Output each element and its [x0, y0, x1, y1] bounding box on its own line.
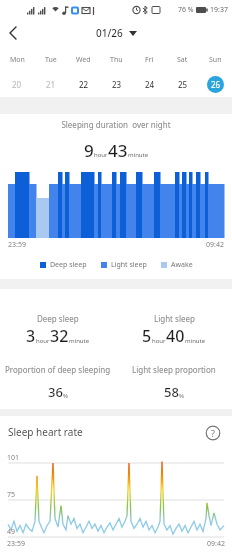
staticText: Deep sleep	[37, 313, 79, 324]
button[interactable]: 23	[112, 79, 122, 90]
staticText: ?	[211, 427, 215, 439]
staticText: minute	[69, 337, 90, 345]
staticText: %	[63, 392, 68, 400]
staticText: Sat	[177, 55, 188, 65]
staticText: hour	[94, 151, 108, 159]
staticText: Light sleep	[111, 260, 147, 270]
staticText: hour	[152, 337, 166, 345]
staticText: 23:59	[7, 539, 25, 549]
staticText: Sleeping duration over night	[0, 119, 232, 130]
staticText: 36	[48, 383, 63, 401]
staticText: 3	[26, 325, 36, 347]
staticText: 9	[84, 139, 94, 161]
staticText: 49	[7, 527, 16, 537]
staticText: Wed	[76, 55, 91, 65]
staticText: minute	[185, 337, 206, 345]
staticText: 75	[7, 490, 16, 500]
staticText: 01/26	[96, 26, 123, 40]
staticText: Sleep heart rate	[8, 425, 83, 439]
staticText: Mon	[10, 55, 25, 65]
staticText: Awake	[171, 260, 193, 270]
staticText: Tue	[45, 55, 57, 65]
staticText: Fri	[145, 55, 154, 65]
staticText: Sun	[209, 55, 222, 65]
staticText: 23:59	[8, 240, 26, 250]
staticText: Proportion of deep sleeping	[5, 364, 111, 375]
button[interactable]: 25	[178, 79, 188, 90]
staticText: Deep sleep	[50, 260, 87, 270]
staticText: Thu	[110, 55, 123, 65]
button[interactable]: 26	[207, 76, 224, 93]
button[interactable]: 20	[12, 79, 22, 90]
staticText: 40	[166, 325, 185, 347]
button[interactable]: 01/26	[96, 26, 137, 40]
staticText: 43	[108, 139, 128, 161]
staticText: 09:42	[207, 539, 225, 549]
staticText: 76 %	[178, 5, 194, 15]
button[interactable]	[0, 20, 26, 46]
staticText: 5	[142, 325, 152, 347]
staticText: %	[179, 392, 184, 400]
staticText: Light sleep proportion	[132, 364, 216, 375]
button[interactable]: ?	[205, 425, 221, 441]
staticText: hour	[36, 337, 50, 345]
staticText: 26	[211, 79, 221, 90]
staticText: 09:42	[206, 240, 224, 250]
staticText: 58	[164, 383, 179, 401]
staticText: 101	[7, 453, 20, 463]
staticText: 19:37	[210, 5, 228, 15]
staticText: 32	[50, 325, 69, 347]
staticText: minute	[128, 151, 149, 159]
button[interactable]: 21	[46, 79, 56, 90]
button[interactable]: 24	[145, 79, 155, 90]
button[interactable]: 22	[79, 79, 89, 90]
staticText: Light sleep	[154, 313, 195, 324]
